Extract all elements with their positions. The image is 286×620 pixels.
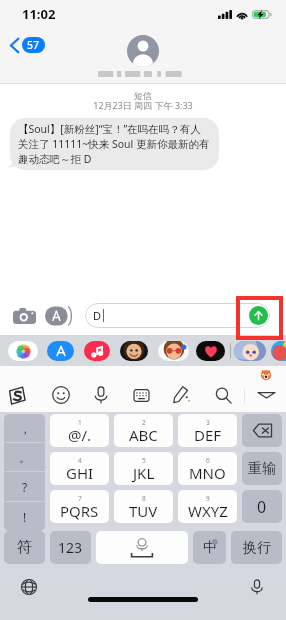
button[interactable]: Memoji bbox=[120, 341, 148, 361]
staticText: TUV bbox=[129, 501, 158, 521]
staticText: JKL bbox=[133, 463, 155, 483]
staticText: ? bbox=[22, 479, 28, 495]
button[interactable]: 2 bbox=[114, 414, 173, 447]
button[interactable]: 【Soul】[新粉丝]“宝！”在吗在吗？有人 关注了 11111~快来 Soul… bbox=[10, 118, 219, 170]
staticText: PQRS bbox=[60, 501, 99, 521]
staticText: ， bbox=[19, 421, 31, 436]
button[interactable]: Send bbox=[249, 306, 268, 325]
button[interactable]: Search bbox=[210, 382, 237, 408]
staticText: 12月23日 周四 下午 3:33 bbox=[0, 99, 286, 111]
button[interactable]: 。 bbox=[4, 443, 45, 471]
staticText: 【Soul】[新粉丝]“宝！”在吗在吗？有人 关注了 11111~快来 Soul… bbox=[18, 122, 210, 166]
staticText: 符 bbox=[17, 538, 32, 557]
staticText: 6 bbox=[206, 456, 210, 465]
button[interactable]: ! bbox=[4, 502, 45, 531]
staticText: 重输 bbox=[248, 460, 276, 478]
staticText: D bbox=[93, 308, 102, 323]
button[interactable]: Space, voice input bbox=[96, 531, 188, 564]
staticText: ABC bbox=[129, 425, 158, 445]
staticText: 5 bbox=[142, 456, 146, 465]
staticText: 换行 bbox=[243, 539, 271, 557]
staticText: 0 bbox=[257, 496, 267, 518]
button[interactable]: 换行 bbox=[231, 531, 282, 564]
button[interactable]: 中 bbox=[193, 531, 226, 564]
staticText: 9 bbox=[206, 494, 210, 503]
staticText: 4 bbox=[78, 456, 82, 465]
button[interactable]: ? bbox=[4, 472, 45, 501]
button[interactable]: Keyboard layout bbox=[128, 382, 155, 408]
button[interactable]: 5 bbox=[114, 452, 173, 485]
button[interactable]: Contact bbox=[127, 35, 159, 67]
staticText: ! bbox=[23, 509, 27, 525]
button[interactable]: Photos bbox=[8, 341, 38, 361]
button[interactable]: Emoji bbox=[47, 382, 74, 408]
button[interactable]: 1 bbox=[50, 414, 109, 447]
staticText: 3 bbox=[206, 418, 210, 427]
button[interactable]: Avatar bbox=[234, 341, 266, 361]
button[interactable]: D bbox=[85, 303, 270, 328]
button[interactable]: Hide keyboard bbox=[253, 382, 280, 408]
button[interactable]: App Store bbox=[45, 305, 72, 327]
button[interactable]: Dictation bbox=[246, 576, 268, 598]
staticText: 中 bbox=[203, 539, 217, 557]
staticText: MNO bbox=[189, 463, 226, 483]
button[interactable]: ， bbox=[4, 414, 45, 442]
button[interactable]: 8 bbox=[114, 490, 173, 523]
staticText: 123 bbox=[58, 538, 83, 557]
staticText: 。 bbox=[19, 450, 31, 465]
button[interactable]: Handwriting bbox=[167, 382, 194, 408]
button[interactable]: 7 bbox=[50, 490, 109, 523]
button[interactable]: 9 bbox=[178, 490, 237, 523]
staticText: 1 bbox=[78, 418, 82, 427]
button[interactable]: 123 bbox=[50, 531, 91, 564]
button[interactable]: App Store bbox=[47, 341, 74, 361]
staticText: 8 bbox=[142, 494, 146, 503]
button[interactable]: Stickers bbox=[158, 341, 189, 361]
staticText: 57 bbox=[27, 38, 40, 52]
staticText: 7 bbox=[78, 494, 82, 503]
staticText: @/. bbox=[68, 425, 92, 445]
button[interactable]: 4 bbox=[50, 452, 109, 485]
staticText: DEF bbox=[194, 425, 222, 445]
staticText: 短信 bbox=[0, 90, 286, 101]
button[interactable]: More apps bbox=[271, 341, 286, 361]
button[interactable]: Sogou input bbox=[3, 382, 30, 408]
button[interactable]: 符 bbox=[4, 531, 45, 564]
staticText: GHI bbox=[66, 463, 94, 483]
button[interactable]: Digital Touch bbox=[196, 341, 225, 361]
button[interactable]: Delete bbox=[242, 414, 282, 447]
button[interactable]: Voice input bbox=[87, 382, 114, 408]
button[interactable]: Camera bbox=[11, 305, 38, 327]
button[interactable]: 3 bbox=[178, 414, 237, 447]
button[interactable]: 6 bbox=[178, 452, 237, 485]
staticText: 11:02 bbox=[22, 5, 56, 23]
staticText: 2 bbox=[142, 418, 146, 427]
staticText: WXYZ bbox=[188, 501, 228, 521]
button[interactable]: 重输 bbox=[242, 452, 282, 485]
button[interactable]: Music bbox=[84, 341, 110, 361]
button[interactable]: 0 bbox=[242, 490, 282, 523]
button[interactable]: Back, 57 unread bbox=[8, 35, 47, 55]
button[interactable]: Change language bbox=[18, 576, 40, 598]
